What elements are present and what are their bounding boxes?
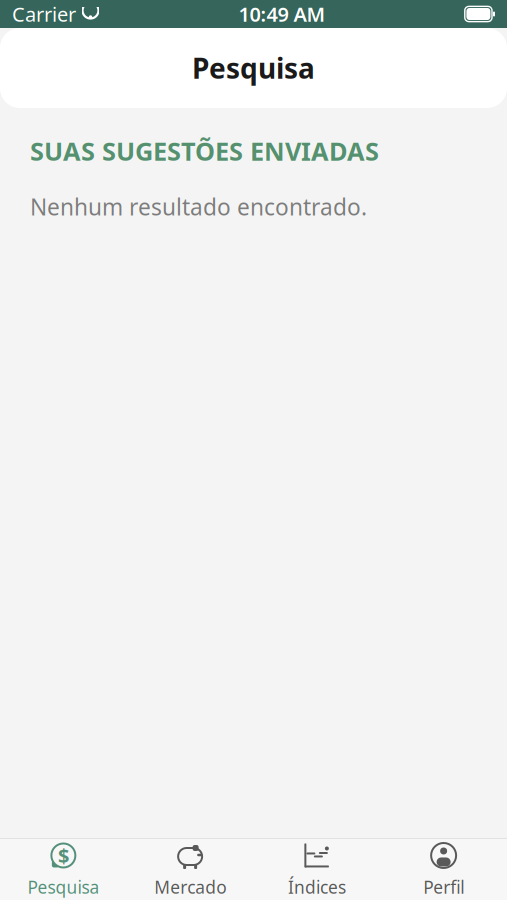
staticText: Pesquisa [27, 875, 99, 898]
button[interactable]: Índices [253, 839, 380, 900]
staticText: Mercado [154, 875, 226, 898]
staticText: Carrier [12, 1, 76, 27]
staticText: $ [58, 842, 69, 869]
button[interactable]: Perfil [380, 839, 507, 900]
staticText: Nenhum resultado encontrado. [30, 192, 367, 222]
staticText: Índices [288, 875, 346, 898]
staticText: SUAS SUGESTÕES ENVIADAS [30, 134, 379, 168]
staticText: Pesquisa [192, 49, 315, 87]
staticText: 10:49 AM [238, 1, 325, 27]
button[interactable]: Mercado [127, 839, 254, 900]
button[interactable]: $ [0, 839, 127, 900]
staticText: Perfil [423, 875, 464, 898]
